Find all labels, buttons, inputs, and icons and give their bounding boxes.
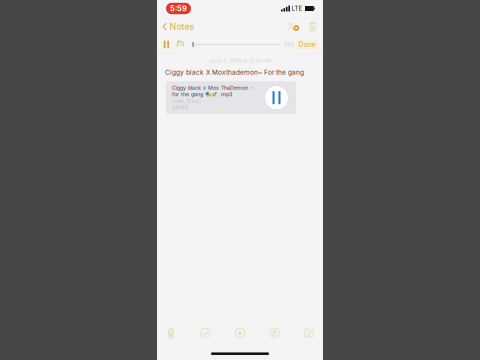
button[interactable]: Notes bbox=[162, 19, 194, 34]
staticText: Ciggy black x Mox ThaDemon - bbox=[172, 85, 252, 91]
button[interactable]: Done bbox=[294, 39, 318, 50]
staticText: 5:59 bbox=[170, 4, 187, 13]
staticText: for the gang 🎭♂ .mp3 bbox=[172, 91, 232, 98]
button[interactable]: Delete note bbox=[300, 22, 318, 31]
button[interactable]: Skip forward 15 seconds bbox=[170, 40, 185, 49]
staticText: 4.8 MB bbox=[172, 104, 188, 110]
button[interactable]: Pause bbox=[162, 41, 170, 48]
button[interactable]: Ciggy black x Mox ThaDemon - bbox=[166, 81, 296, 114]
button[interactable]: Checklist bbox=[198, 327, 212, 339]
button[interactable]: Add people bbox=[286, 21, 300, 32]
staticText: 0 min, 18 sec bbox=[172, 98, 201, 104]
staticText: June 4, 2019 at 5:59 PM bbox=[209, 57, 271, 64]
staticText: Done bbox=[299, 40, 316, 49]
staticText: Ciggy black X Moxthademon~ For the gang bbox=[165, 68, 304, 76]
button[interactable]: Add attachment bbox=[233, 327, 247, 339]
staticText: 0:03 bbox=[284, 41, 294, 48]
button[interactable]: Delete bbox=[164, 327, 178, 339]
staticText: Notes bbox=[169, 21, 194, 32]
button[interactable]: New note bbox=[302, 327, 316, 339]
button[interactable]: Share bbox=[267, 327, 281, 339]
staticText: 15 bbox=[178, 42, 182, 47]
button[interactable]: Recording in progress, 5:59 bbox=[166, 3, 191, 14]
staticText: LTE bbox=[291, 5, 302, 12]
